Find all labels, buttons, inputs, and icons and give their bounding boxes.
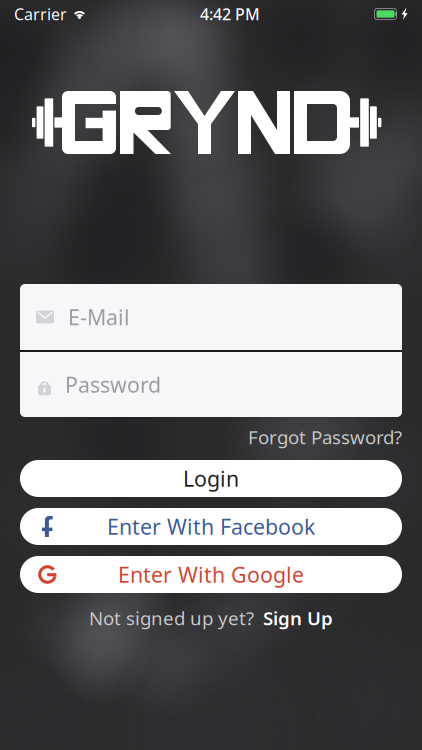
staticText: E-Mail [68, 303, 130, 331]
staticText: 4:42 PM [200, 3, 260, 25]
button[interactable]: Password [20, 352, 402, 417]
button[interactable]: Forgot Password? [248, 425, 402, 449]
button[interactable]: Enter With Facebook [20, 508, 402, 545]
button[interactable]: E-Mail [20, 284, 402, 350]
staticText: Forgot Password? [248, 425, 402, 449]
staticText: Sign Up [263, 606, 333, 630]
staticText: Carrier [14, 3, 67, 25]
staticText: Enter With Google [118, 560, 304, 589]
button[interactable]: Sign Up [263, 606, 333, 630]
button[interactable]: Login [20, 460, 402, 497]
staticText: Login [183, 464, 239, 493]
staticText: Password [65, 370, 161, 399]
button[interactable]: Enter With Google [20, 556, 402, 593]
staticText: Enter With Facebook [107, 512, 315, 541]
staticText: Not signed up yet? [89, 606, 254, 630]
